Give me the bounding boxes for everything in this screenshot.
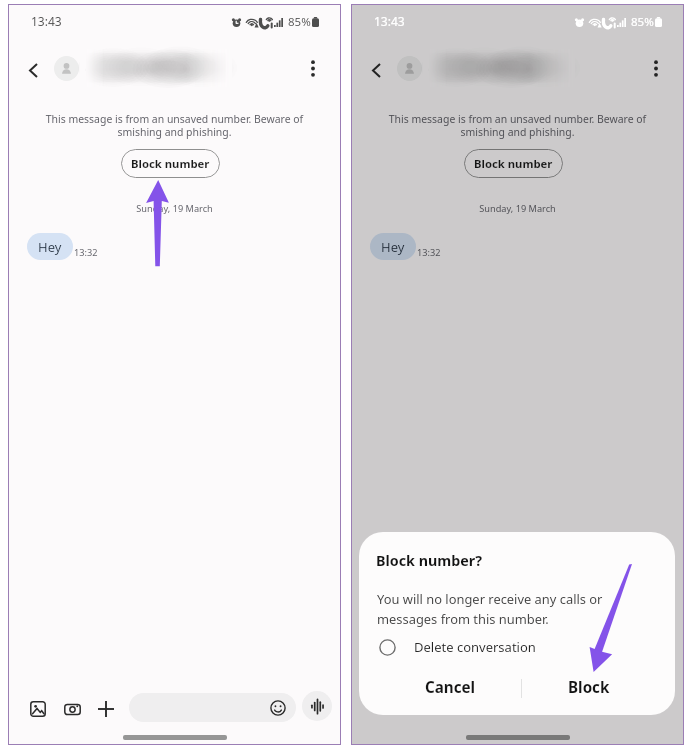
button[interactable]: Gallery [24, 695, 52, 723]
staticText: Block number? [376, 551, 482, 570]
staticText: Sunday, 19 March [351, 202, 684, 215]
button[interactable]: Contact photo [54, 56, 79, 81]
button[interactable]: More options [297, 52, 329, 84]
button[interactable]: Add attachment [92, 695, 120, 723]
staticText: Block [568, 677, 610, 698]
staticText: Hey [381, 238, 405, 256]
staticText: Sunday, 19 March [8, 202, 341, 215]
button[interactable]: Back [359, 53, 393, 87]
button[interactable]: Camera [58, 695, 86, 723]
button[interactable]: More options [640, 52, 672, 84]
staticText: You will no longer receive any calls or … [377, 590, 603, 628]
button[interactable]: Emoji [267, 697, 289, 719]
button[interactable]: Block [522, 663, 675, 711]
staticText: 13:43 [374, 13, 405, 29]
staticText: Cancel [425, 677, 476, 698]
staticText: 13:43 [31, 13, 62, 29]
staticText: This message is from an unsaved number. … [359, 112, 676, 139]
button[interactable]: Contact photo [397, 56, 422, 81]
staticText: Hey [38, 238, 62, 256]
staticText: 85% [288, 14, 311, 30]
button[interactable]: Cancel [359, 663, 522, 711]
staticText: This message is from an unsaved number. … [16, 112, 333, 139]
button[interactable]: Hey [370, 233, 416, 260]
button[interactable]: Block number [121, 149, 220, 178]
staticText: 85% [631, 14, 654, 30]
staticText: Block number [131, 156, 210, 171]
staticText: 13:32 [417, 246, 441, 259]
button[interactable]: Voice message [302, 691, 332, 721]
staticText: 13:32 [74, 246, 98, 259]
button[interactable]: Block number [464, 149, 563, 178]
button[interactable]: Delete conversation [379, 632, 536, 662]
button[interactable]: Text message [129, 693, 296, 722]
button[interactable]: Hey [27, 233, 73, 260]
staticText: Block number [474, 156, 553, 171]
staticText: Delete conversation [414, 638, 536, 656]
button[interactable]: Back [16, 53, 50, 87]
